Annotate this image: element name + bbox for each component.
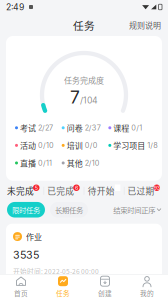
staticText: 长期任务	[55, 204, 83, 215]
staticText: 1/8	[147, 141, 158, 150]
staticText: 结束时间正序	[113, 204, 155, 215]
staticText: 开始时间: 2022-05-26 00:00	[13, 266, 99, 276]
staticText: 0/1	[131, 123, 142, 132]
staticText: 限时任务	[12, 204, 40, 215]
button[interactable]: 未完成	[4, 184, 43, 197]
staticText: 2:49	[6, 2, 24, 12]
button[interactable]: 问卷	[62, 122, 106, 134]
staticText: 5	[35, 184, 38, 191]
staticText: 2/27	[38, 123, 53, 132]
staticText: /104	[80, 95, 98, 106]
button[interactable]: 已过期	[124, 184, 164, 197]
staticText: 任务	[73, 17, 95, 33]
staticText: 任务完成度	[64, 74, 104, 86]
staticText: 学习项目	[113, 140, 145, 151]
button[interactable]: 学习项目	[108, 140, 153, 151]
staticText: 作业	[26, 231, 42, 242]
button[interactable]: 规则说明	[122, 15, 168, 35]
button[interactable]: 其他	[62, 157, 106, 169]
button[interactable]: 活动	[15, 140, 60, 151]
staticText: 问卷	[67, 122, 83, 134]
staticText: 创建	[98, 288, 112, 298]
staticText: 0/10	[38, 141, 54, 150]
staticText: 我的	[140, 288, 154, 298]
staticText: 任务	[56, 288, 70, 298]
button[interactable]: 已完成	[44, 184, 84, 197]
staticText: 直播	[20, 157, 36, 169]
staticText: 未完成	[7, 184, 34, 197]
staticText: 0/11	[38, 158, 52, 167]
button[interactable]: 我的	[126, 273, 168, 300]
button[interactable]: 培训	[62, 140, 106, 151]
staticText: 7	[70, 87, 80, 108]
button[interactable]: 直播	[15, 157, 60, 169]
button[interactable]: 长期任务	[50, 202, 88, 217]
staticText: 待开始	[88, 184, 115, 197]
staticText: 培训	[67, 140, 83, 151]
button[interactable]: 待开始	[84, 184, 124, 197]
button[interactable]: 任务	[42, 273, 84, 300]
button[interactable]: 首页	[0, 273, 42, 300]
staticText: 课程	[113, 122, 129, 134]
staticText: 3535	[13, 248, 39, 261]
button[interactable]: 结束时间正序	[113, 202, 161, 217]
staticText: 2/10	[85, 158, 100, 167]
staticText: 考试	[20, 122, 36, 134]
staticText: 6	[75, 184, 78, 191]
button[interactable]: 作业	[6, 224, 162, 284]
staticText: 活动	[20, 140, 36, 151]
staticText: 2/37	[85, 123, 101, 132]
staticText: 规则说明	[129, 19, 161, 31]
button[interactable]: 考试	[15, 122, 60, 134]
staticText: 已完成	[47, 184, 74, 197]
button[interactable]: 限时任务	[7, 202, 45, 217]
staticText: 首页	[14, 288, 28, 298]
button[interactable]: 创建	[84, 273, 126, 300]
staticText: 0/0	[85, 141, 98, 150]
staticText: 93	[154, 184, 160, 191]
staticText: 已过期	[127, 184, 154, 197]
button[interactable]: 课程	[108, 122, 153, 134]
staticText: 其他	[67, 157, 83, 169]
